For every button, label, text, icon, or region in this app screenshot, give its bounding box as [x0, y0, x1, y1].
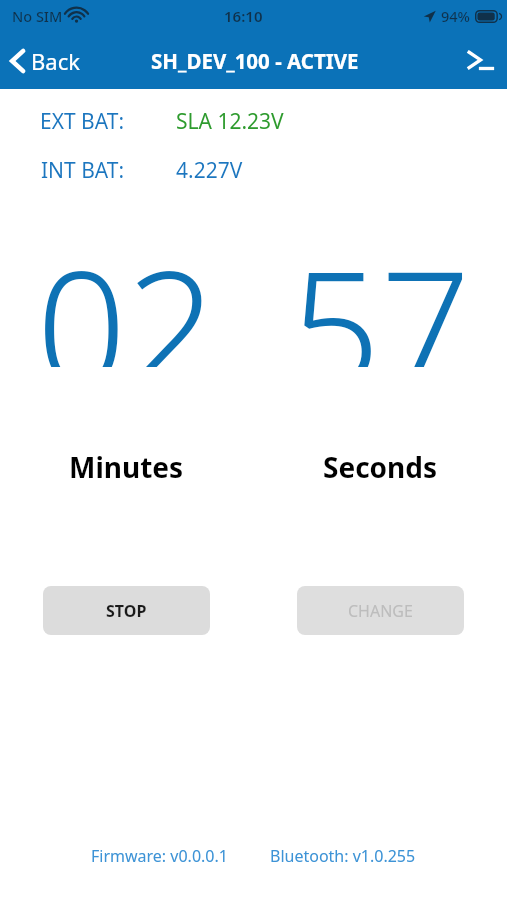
- button[interactable]: STOP: [43, 586, 210, 635]
- button[interactable]: Back: [0, 38, 92, 84]
- staticText: 94%: [441, 6, 470, 26]
- staticText: Firmware: v0.0.0.1: [91, 845, 228, 867]
- staticText: CHANGE: [348, 600, 413, 622]
- staticText: SLA 12.23V: [176, 107, 284, 136]
- staticText: Seconds: [323, 448, 438, 486]
- staticText: 02: [36, 217, 217, 367]
- staticText: 4.227V: [176, 156, 243, 185]
- staticText: STOP: [106, 600, 147, 622]
- staticText: EXT BAT:: [40, 107, 125, 136]
- staticText: INT BAT:: [41, 156, 125, 185]
- staticText: Minutes: [69, 448, 184, 486]
- staticText: 57: [290, 217, 471, 367]
- button[interactable]: Terminal console: [453, 40, 507, 82]
- staticText: 16:10: [224, 6, 263, 26]
- button[interactable]: CHANGE: [297, 586, 464, 635]
- staticText: No SIM: [12, 6, 63, 26]
- staticText: SH_DEV_100 - ACTIVE: [151, 47, 359, 75]
- staticText: Bluetooth: v1.0.255: [270, 845, 416, 867]
- staticText: Back: [31, 46, 80, 76]
